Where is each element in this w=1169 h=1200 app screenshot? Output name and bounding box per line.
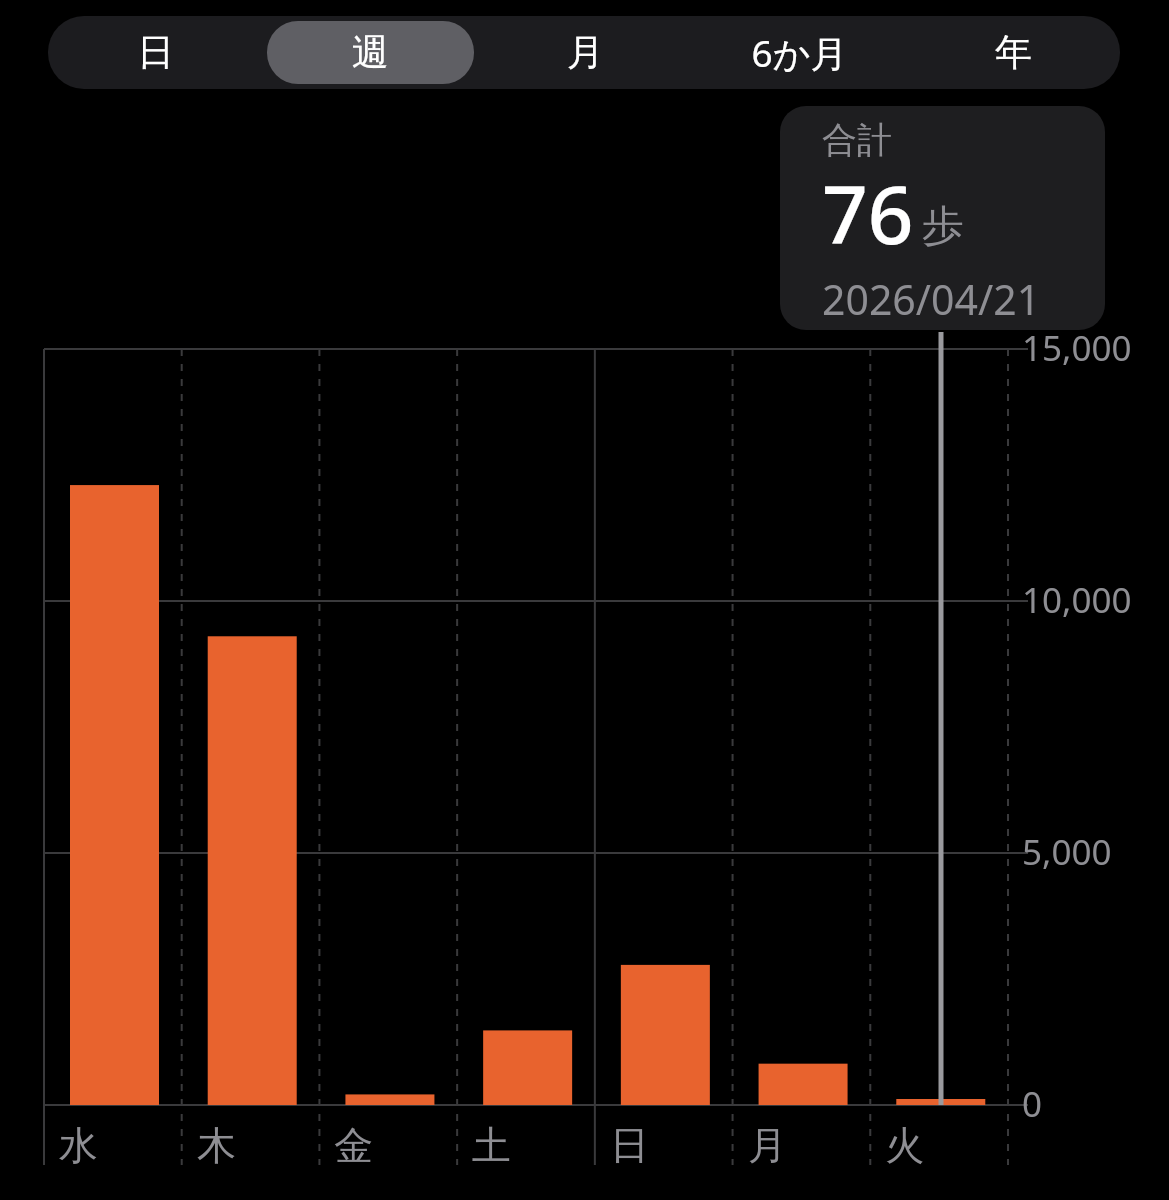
staticText: 月 (748, 1121, 787, 1170)
staticText: 土 (472, 1121, 511, 1170)
button[interactable]: 年 (910, 21, 1116, 84)
button[interactable]: 合計 (780, 106, 1105, 330)
staticText: 月 (567, 29, 604, 76)
staticText: 年 (995, 29, 1032, 76)
button[interactable]: 月 (482, 21, 688, 84)
staticText: 木 (197, 1121, 236, 1170)
staticText: 0 (1022, 1080, 1043, 1128)
staticText: 火 (885, 1121, 924, 1170)
button[interactable]: 6か月 (696, 21, 902, 84)
staticText: 10,000 (1022, 576, 1132, 624)
staticText: 日 (610, 1121, 649, 1170)
button[interactable]: 週 (267, 21, 474, 84)
staticText: 水 (59, 1121, 98, 1170)
staticText: 金 (334, 1121, 373, 1170)
staticText: 2026/04/21 (822, 271, 1041, 327)
staticText: 歩 (922, 200, 964, 253)
staticText: 合計 (822, 118, 892, 162)
button[interactable]: 日 (52, 21, 259, 84)
staticText: 76 (822, 158, 914, 267)
staticText: 5,000 (1022, 828, 1112, 876)
staticText: 週 (352, 29, 389, 76)
staticText: 15,000 (1022, 324, 1132, 372)
staticText: 日 (137, 29, 174, 76)
staticText: 6か月 (751, 27, 848, 78)
